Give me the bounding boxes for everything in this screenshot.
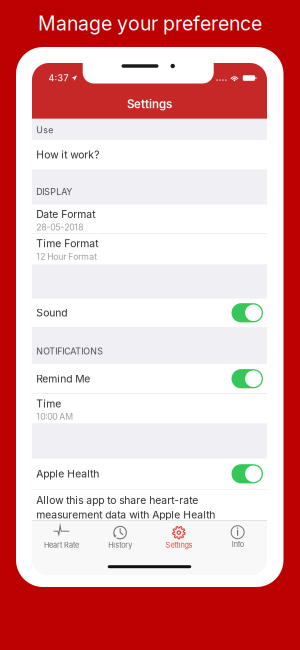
staticText: Time Format	[36, 237, 98, 250]
staticText: NOTIFICATIONS	[36, 346, 103, 356]
button[interactable]: Time	[32, 394, 267, 423]
staticText: 10:00 AM	[36, 411, 73, 422]
staticText: Time	[36, 397, 61, 410]
button[interactable]: Time Format	[32, 234, 267, 265]
button[interactable]: Sound	[32, 299, 267, 327]
button[interactable]: Apple Health	[32, 458, 267, 489]
staticText: Use	[36, 125, 53, 135]
staticText: History	[108, 541, 132, 550]
staticText: 28-05-2018	[36, 222, 83, 232]
staticText: Heart Rate	[44, 541, 79, 550]
staticText: Allow this app to share heart-rate	[36, 494, 198, 507]
staticText: Remind Me	[36, 372, 90, 385]
staticText: i	[236, 525, 239, 538]
staticText: How it work?	[36, 148, 99, 161]
staticText: Date Format	[36, 208, 95, 220]
staticText: Manage your preference	[38, 12, 262, 35]
staticText: Apple Health	[36, 467, 99, 480]
staticText: Settings	[127, 97, 172, 111]
button[interactable]: Settings	[149, 526, 208, 552]
staticText: measurement data with Apple Health	[36, 509, 215, 521]
button[interactable]: Heart Rate	[32, 526, 91, 552]
button[interactable]: i	[208, 526, 267, 552]
staticText: DISPLAY	[36, 186, 72, 197]
staticText: Info	[232, 540, 244, 549]
staticText: Sound	[36, 306, 67, 319]
button[interactable]: Remind Me	[32, 364, 267, 393]
staticText: 4:37	[49, 73, 69, 83]
staticText: 12 Hour Format	[36, 251, 97, 262]
button[interactable]: History	[91, 526, 150, 552]
staticText: Settings	[165, 541, 192, 550]
button[interactable]: How it work?	[32, 140, 267, 170]
button[interactable]: Date Format	[32, 205, 267, 233]
